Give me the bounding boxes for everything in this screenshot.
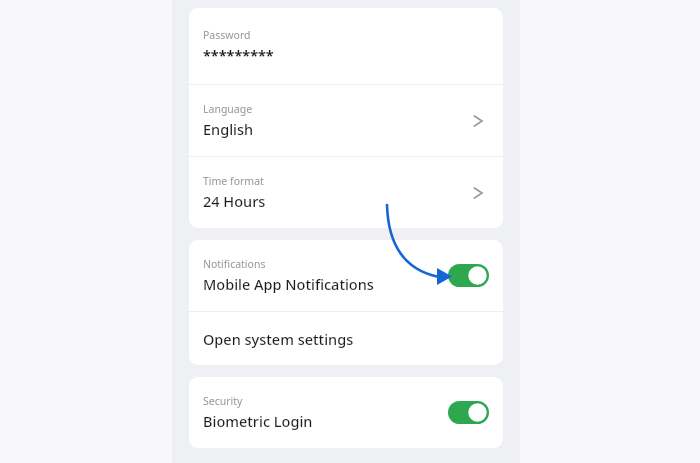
button[interactable]: Toggle, on	[448, 264, 489, 287]
staticText: English	[203, 119, 254, 139]
button[interactable]: Notifications	[189, 240, 503, 311]
button[interactable]: Password	[189, 8, 503, 84]
staticText: Notifications	[203, 257, 266, 271]
staticText: Biometric Login	[203, 411, 313, 431]
button[interactable]: Open system settings	[189, 312, 503, 365]
staticText: Mobile App Notifications	[203, 274, 374, 294]
button[interactable]: Open	[469, 111, 489, 131]
staticText: Time format	[203, 174, 264, 188]
staticText: *********	[203, 45, 274, 65]
staticText: Language	[203, 102, 253, 116]
staticText: Security	[203, 394, 243, 408]
button[interactable]: Security	[189, 377, 503, 448]
button[interactable]: Open	[469, 183, 489, 203]
staticText: 24 Hours	[203, 191, 266, 211]
button[interactable]: Time format	[189, 157, 503, 228]
staticText: Open system settings	[203, 329, 354, 349]
button[interactable]: Toggle, on	[448, 401, 489, 424]
staticText: Password	[203, 28, 251, 42]
button[interactable]: Language	[189, 85, 503, 156]
